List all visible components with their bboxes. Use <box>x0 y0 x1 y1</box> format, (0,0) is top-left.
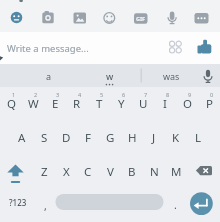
staticText: P <box>206 96 213 112</box>
staticText: G <box>106 130 115 146</box>
staticText: 9 <box>188 91 192 98</box>
button[interactable] <box>159 5 185 30</box>
staticText: 5 <box>100 91 104 98</box>
button[interactable]: M <box>165 155 187 189</box>
staticText: X <box>63 164 70 180</box>
button[interactable]: L <box>187 121 209 155</box>
staticText: a <box>46 70 52 82</box>
button[interactable]: F <box>77 121 99 155</box>
button[interactable]: T <box>88 87 110 121</box>
button[interactable]: N <box>143 155 165 189</box>
button[interactable] <box>127 5 153 30</box>
staticText: E <box>52 96 59 112</box>
staticText: , <box>44 199 47 213</box>
button[interactable]: D <box>55 121 77 155</box>
button[interactable] <box>162 34 188 60</box>
staticText: ?123 <box>9 197 27 208</box>
staticText: 7 <box>144 91 148 98</box>
button[interactable] <box>78 64 141 87</box>
button[interactable] <box>96 5 122 30</box>
button[interactable] <box>0 155 33 189</box>
staticText: 6 <box>122 91 126 98</box>
staticText: B <box>128 164 136 180</box>
button[interactable] <box>4 5 29 30</box>
staticText: Q <box>7 96 16 112</box>
staticText: Y <box>118 96 125 112</box>
button[interactable]: X <box>55 155 77 189</box>
button[interactable]: O <box>176 87 198 121</box>
staticText: T <box>96 96 103 112</box>
button[interactable]: Write a message... <box>0 32 160 64</box>
staticText: J <box>152 130 156 146</box>
staticText: 3 <box>56 91 60 98</box>
staticText: 8 <box>166 91 170 98</box>
staticText: M <box>171 164 182 180</box>
button[interactable]: C <box>77 155 99 189</box>
button[interactable]: W <box>22 87 44 121</box>
button[interactable]: A <box>11 121 33 155</box>
button[interactable]: P <box>198 87 220 121</box>
button[interactable]: V <box>99 155 121 189</box>
staticText: 1 <box>12 91 16 98</box>
button[interactable]: Z <box>33 155 55 189</box>
button[interactable]: Y <box>110 87 132 121</box>
staticText: GIF <box>136 15 146 22</box>
button[interactable]: H <box>121 121 143 155</box>
staticText: V <box>107 164 114 180</box>
staticText: U <box>139 96 148 112</box>
button[interactable] <box>188 5 214 30</box>
button[interactable]: R <box>66 87 88 121</box>
button[interactable]: ?123 <box>1 186 34 219</box>
staticText: I <box>163 96 167 112</box>
button[interactable] <box>187 155 220 189</box>
button[interactable] <box>190 34 216 60</box>
button[interactable] <box>67 5 93 30</box>
staticText: O <box>183 96 192 112</box>
button[interactable]: G <box>99 121 121 155</box>
staticText: R <box>73 96 81 112</box>
staticText: Z <box>41 164 48 180</box>
staticText: w <box>106 70 114 82</box>
staticText: F <box>85 130 91 146</box>
button[interactable] <box>0 64 78 87</box>
staticText: 4 <box>78 91 82 98</box>
staticText: C <box>84 164 92 180</box>
button[interactable]: S <box>33 121 55 155</box>
button[interactable]: . <box>164 188 187 221</box>
staticText: K <box>172 130 180 146</box>
staticText: Write a message... <box>7 42 89 55</box>
button[interactable] <box>187 189 220 222</box>
staticText: N <box>150 164 159 180</box>
button[interactable]: , <box>34 189 56 222</box>
staticText: S <box>41 130 48 146</box>
staticText: L <box>195 130 202 146</box>
button[interactable]: B <box>121 155 143 189</box>
button[interactable]: K <box>165 121 187 155</box>
staticText: 2 <box>34 91 38 98</box>
staticText: 0 <box>210 91 214 98</box>
staticText: was <box>163 70 180 82</box>
button[interactable]: U <box>132 87 154 121</box>
button[interactable]: J <box>143 121 165 155</box>
button[interactable] <box>35 5 61 30</box>
staticText: D <box>62 130 71 146</box>
button[interactable]: E <box>44 87 66 121</box>
button[interactable] <box>141 64 190 87</box>
staticText: H <box>128 130 137 146</box>
button[interactable]: Q <box>0 87 22 121</box>
button[interactable] <box>55 189 164 222</box>
staticText: . <box>174 198 177 212</box>
staticText: W <box>28 96 39 112</box>
staticText: A <box>18 130 26 146</box>
button[interactable] <box>190 64 220 87</box>
button[interactable]: I <box>154 87 176 121</box>
